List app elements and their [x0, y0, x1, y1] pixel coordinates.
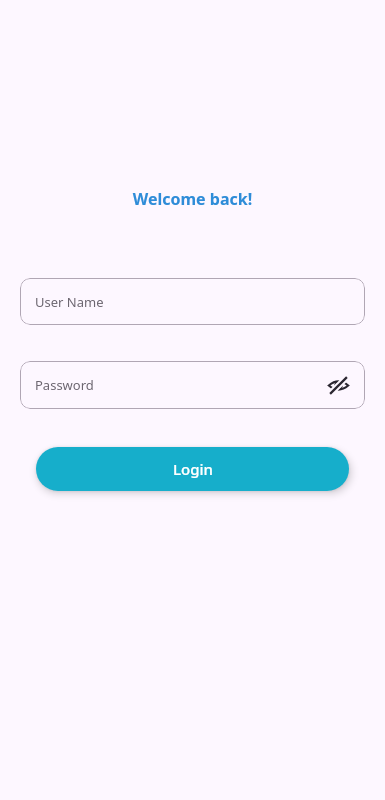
staticText: Login — [173, 459, 213, 479]
staticText: Welcome back! — [0, 188, 385, 210]
button[interactable]: Password — [20, 361, 365, 409]
staticText: User Name — [35, 293, 104, 311]
staticText: Password — [35, 376, 94, 394]
button[interactable]: Login — [36, 447, 349, 491]
button[interactable]: User Name — [20, 278, 365, 325]
button[interactable]: Toggle password visibility — [321, 368, 355, 402]
